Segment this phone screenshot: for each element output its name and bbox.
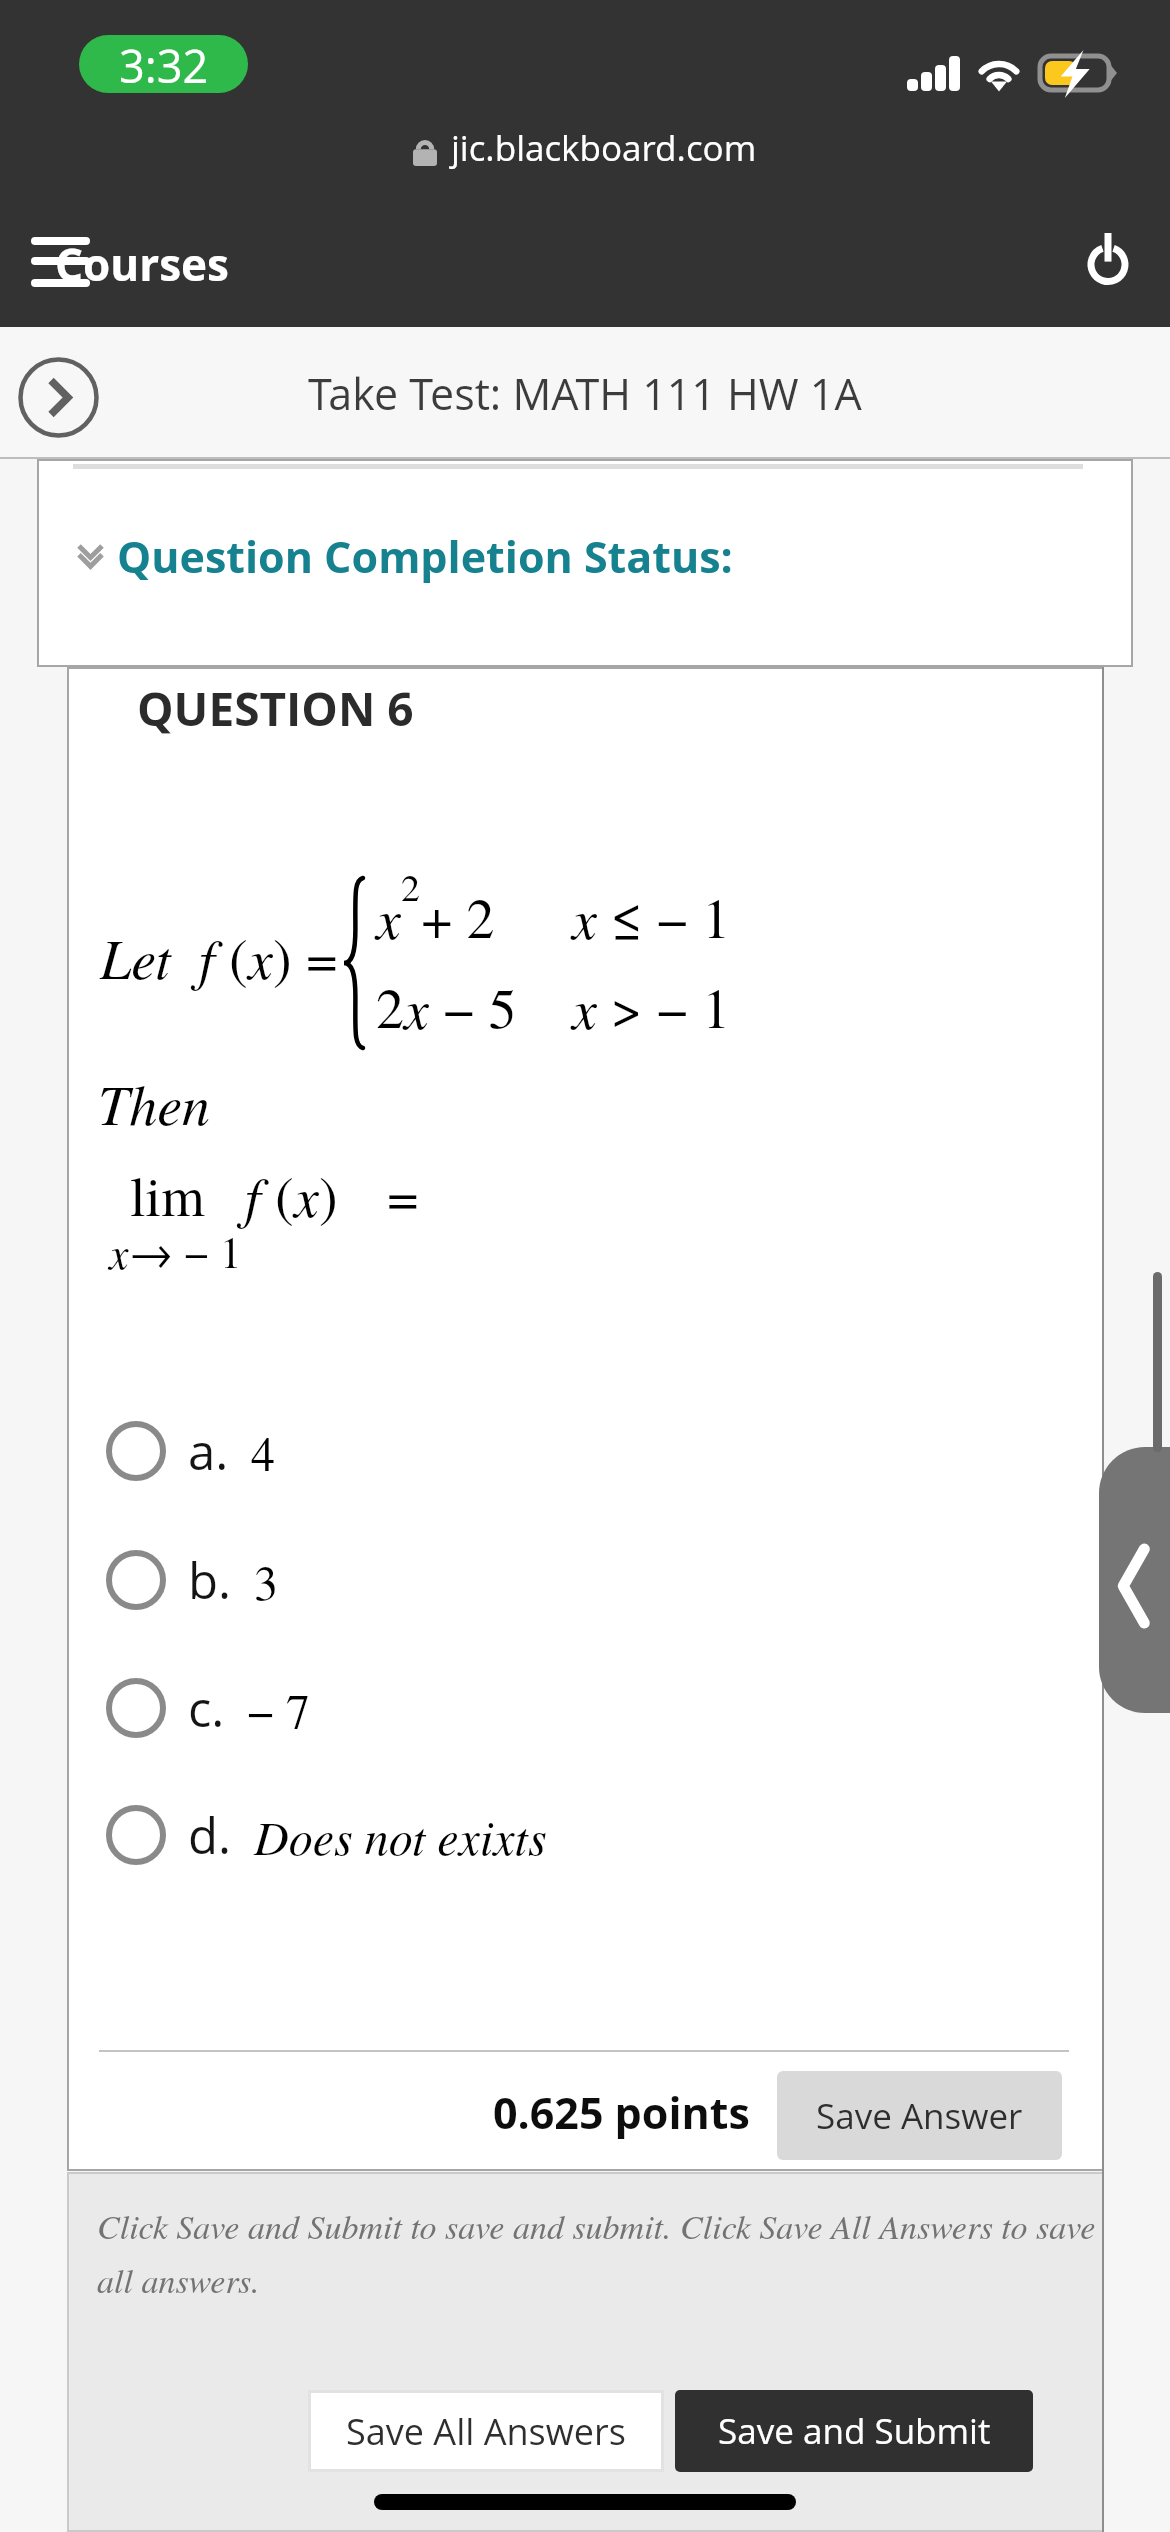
staticText: 2 (401, 861, 421, 912)
button[interactable]: Save Answer (777, 2071, 1062, 2160)
staticText: = (292, 919, 338, 994)
staticText: x (376, 879, 401, 954)
staticText: x (572, 879, 597, 954)
staticText: 0.625 points (493, 2083, 750, 2142)
staticText: − 7 (247, 1677, 311, 1741)
staticText: ) (273, 919, 292, 994)
staticText: − 5 (429, 969, 517, 1044)
button[interactable]: Log out (1060, 218, 1158, 300)
staticText: + 2 (421, 879, 495, 954)
staticText: → − 1 (129, 1222, 242, 1281)
button[interactable]: a. (87, 1401, 1047, 1501)
button[interactable]: d. (87, 1785, 1047, 1885)
staticText: 3 (254, 1549, 279, 1613)
button[interactable]: Question Completion Status: (79, 525, 733, 587)
staticText: Does not exixts (254, 1804, 547, 1868)
button[interactable]: Open navigation panel (1099, 1447, 1170, 1713)
staticText: 2 (376, 969, 404, 1044)
staticText: x (109, 1222, 129, 1281)
button[interactable]: c. (87, 1658, 1047, 1758)
staticText (171, 919, 199, 994)
button[interactable]: Save and Submit (675, 2390, 1033, 2472)
staticText: ( (215, 919, 248, 994)
button[interactable]: Save All Answers (308, 2390, 664, 2472)
staticText: lim (130, 1157, 205, 1232)
staticText: Click Save and Submit to save and submit… (97, 2203, 1096, 2249)
staticText: Question Completion Status: (117, 527, 733, 586)
staticText: Take Test: MATH 111 HW 1A (308, 364, 862, 423)
staticText: 4 (251, 1420, 276, 1484)
staticText: Courses (55, 234, 229, 294)
staticText: Save Answer (816, 2092, 1023, 2140)
staticText: Let (100, 919, 171, 994)
staticText: all answers. (97, 2257, 260, 2303)
button[interactable]: b. (87, 1530, 1047, 1630)
staticText: ) (319, 1157, 338, 1232)
staticText: = (387, 1157, 419, 1232)
staticText: c. (188, 1675, 225, 1742)
staticText: Then (98, 1065, 210, 1140)
button[interactable]: Courses (20, 218, 260, 308)
staticText: ≤ − 1 (597, 879, 731, 954)
staticText: QUESTION 6 (137, 677, 414, 740)
staticText: x (572, 969, 597, 1044)
staticText: f (199, 919, 215, 994)
staticText: ( (261, 1157, 294, 1232)
staticText: 3:32 (119, 35, 209, 93)
staticText: x (248, 919, 273, 994)
staticText: d. (188, 1802, 232, 1869)
staticText: b. (188, 1547, 232, 1614)
staticText: x (404, 969, 429, 1044)
staticText: f (245, 1157, 261, 1232)
staticText: x (294, 1157, 319, 1232)
staticText: a. (188, 1418, 229, 1485)
staticText: Save All Answers (346, 2407, 626, 2456)
staticText: > − 1 (597, 969, 731, 1044)
button[interactable]: Expand navigation (14, 353, 103, 442)
staticText: jic.blackboard.com (451, 124, 757, 172)
staticText: Save and Submit (718, 2407, 991, 2455)
